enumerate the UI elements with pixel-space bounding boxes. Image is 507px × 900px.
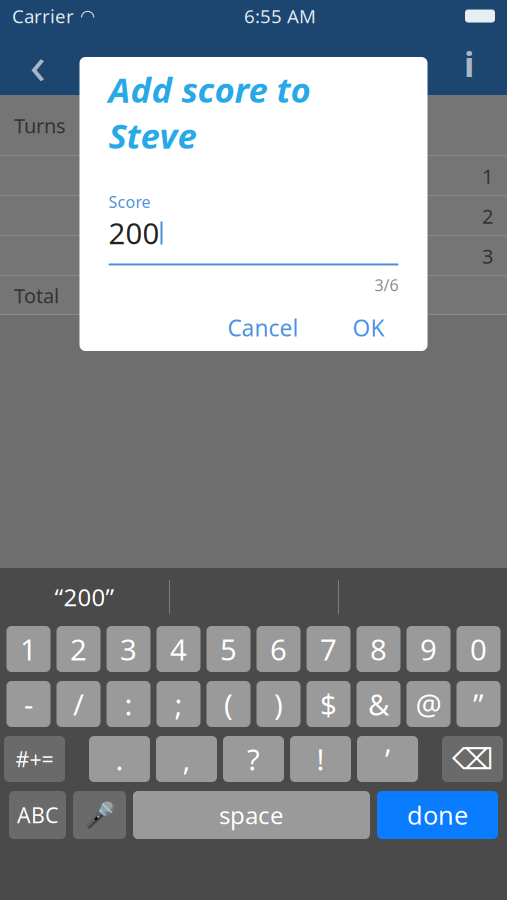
button[interactable]: Exclamation mark	[290, 736, 351, 782]
staticText: “200”	[54, 581, 114, 613]
staticText: /	[73, 684, 84, 723]
button[interactable]: Close parenthesis	[256, 681, 300, 727]
button[interactable]: Symbols	[4, 736, 65, 782]
staticText: Turns	[14, 112, 66, 139]
button[interactable]: 3	[106, 626, 150, 672]
staticText: 6:55 AM	[244, 4, 316, 28]
staticText: Score	[108, 191, 150, 212]
button[interactable]: 5	[206, 626, 250, 672]
staticText: Total	[14, 282, 59, 309]
button[interactable]: 4	[156, 626, 200, 672]
button[interactable]: Semicolon	[156, 681, 200, 727]
staticText: :	[124, 684, 132, 723]
staticText: ;	[174, 684, 182, 723]
staticText: ”	[473, 684, 484, 723]
button[interactable]: “200”	[0, 568, 169, 626]
staticText: 7	[320, 629, 337, 668]
button[interactable]: Question mark	[223, 736, 284, 782]
staticText: 2	[70, 629, 87, 668]
staticText: )	[274, 684, 283, 723]
staticText: 1	[20, 629, 37, 668]
button[interactable]: 6	[256, 626, 300, 672]
staticText: -	[24, 684, 33, 723]
button[interactable]: Quotation mark	[456, 681, 500, 727]
staticText: Cancel	[227, 313, 298, 343]
staticText: 3/6	[374, 274, 398, 296]
staticText: i	[464, 40, 474, 86]
button[interactable]: Back	[10, 34, 66, 92]
staticText: space	[219, 799, 284, 831]
staticText: 🎤	[83, 800, 115, 829]
button[interactable]: Colon	[106, 681, 150, 727]
button[interactable]: Comma	[156, 736, 217, 782]
staticText: 3	[482, 243, 493, 269]
staticText: 1	[482, 163, 493, 189]
staticText: @	[415, 684, 441, 723]
staticText: #+=	[15, 745, 53, 773]
button[interactable]: Delete	[442, 736, 503, 782]
staticText: ’	[385, 739, 390, 778]
button[interactable]: Open parenthesis	[206, 681, 250, 727]
button[interactable]: 0	[456, 626, 500, 672]
staticText: ?	[247, 739, 260, 778]
staticText: 2	[482, 203, 493, 229]
staticText: 3	[120, 629, 137, 668]
staticText: 5	[220, 629, 237, 668]
button[interactable]: Info	[441, 34, 497, 92]
staticText: .	[115, 739, 123, 778]
staticText: 6	[270, 629, 287, 668]
staticText: Add score to Steve	[108, 66, 310, 158]
staticText: 8	[370, 629, 387, 668]
button[interactable]: Cancel	[213, 304, 312, 352]
button[interactable]: 7	[306, 626, 350, 672]
staticText: 4	[170, 629, 187, 668]
staticText: 9	[420, 629, 437, 668]
staticText: ABC	[17, 801, 58, 829]
button[interactable]: Ampersand	[356, 681, 400, 727]
button[interactable]: done	[377, 791, 498, 839]
button[interactable]: Hyphen	[6, 681, 50, 727]
staticText: 200	[108, 213, 159, 252]
staticText: ,	[182, 739, 190, 778]
button[interactable]: 9	[406, 626, 450, 672]
button[interactable]: space	[133, 791, 370, 839]
button[interactable]: 1	[6, 626, 50, 672]
staticText: done	[407, 798, 468, 832]
button[interactable]: Period	[89, 736, 150, 782]
staticText: ⌫	[452, 742, 493, 776]
staticText: $	[320, 684, 337, 723]
staticText: Carrier	[12, 4, 74, 28]
staticText: 0	[470, 629, 487, 668]
staticText: ‹	[29, 28, 46, 99]
staticText: (	[224, 684, 233, 723]
button[interactable]: Slash	[56, 681, 100, 727]
button[interactable]: Dollar	[306, 681, 350, 727]
staticText: !	[316, 739, 324, 778]
button[interactable]: 2	[56, 626, 100, 672]
staticText: OK	[352, 313, 384, 343]
button[interactable]: At sign	[406, 681, 450, 727]
button[interactable]: Apostrophe	[357, 736, 418, 782]
staticText: ◠	[74, 6, 95, 26]
button[interactable]: OK	[338, 304, 398, 352]
button[interactable]: Letters	[9, 791, 66, 839]
button[interactable]: 8	[356, 626, 400, 672]
staticText: &	[368, 684, 389, 723]
button[interactable]: Dictate	[73, 791, 126, 839]
